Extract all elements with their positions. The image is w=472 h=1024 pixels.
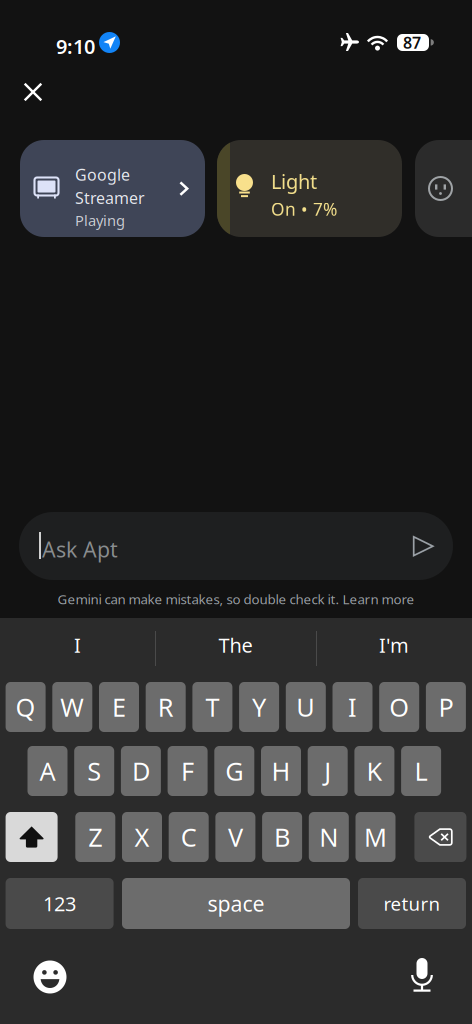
button[interactable]: Emoji keyboard <box>25 952 75 1002</box>
button[interactable]: 123 <box>6 878 114 929</box>
staticText: I <box>348 690 357 724</box>
staticText: B <box>274 820 290 854</box>
button[interactable]: Z <box>75 812 115 862</box>
staticText: Y <box>252 690 266 724</box>
staticText: G <box>225 754 243 788</box>
button[interactable]: Google <box>20 140 205 237</box>
button[interactable]: Dictation <box>397 950 447 1000</box>
staticText: J <box>324 754 331 788</box>
button[interactable]: H <box>261 746 301 796</box>
button[interactable]: L <box>401 746 441 796</box>
staticText: S <box>87 754 101 788</box>
button[interactable]: Outlet <box>415 140 472 237</box>
button[interactable]: space <box>122 878 350 929</box>
staticText: Google <box>75 164 130 185</box>
button[interactable]: Delete <box>414 812 466 862</box>
button[interactable]: I <box>332 682 372 732</box>
staticText: O <box>389 690 409 724</box>
button[interactable]: O <box>379 682 419 732</box>
staticText: C <box>181 820 197 854</box>
staticText: T <box>205 690 219 724</box>
staticText: Playing <box>75 210 125 230</box>
staticText: Gemini can make mistakes, so double chec… <box>57 590 414 608</box>
button[interactable]: M <box>355 812 395 862</box>
staticText: P <box>438 690 453 724</box>
staticText: W <box>60 690 84 724</box>
button[interactable]: I'm <box>316 618 472 672</box>
staticText: K <box>366 754 382 788</box>
button[interactable]: Shift <box>6 812 58 862</box>
staticText: A <box>39 754 55 788</box>
button[interactable]: T <box>192 682 232 732</box>
button[interactable]: U <box>286 682 326 732</box>
button[interactable]: N <box>309 812 349 862</box>
button[interactable]: D <box>121 746 161 796</box>
staticText: X <box>134 820 149 854</box>
staticText: On • 7% <box>271 198 337 221</box>
button[interactable]: P <box>426 682 466 732</box>
button[interactable]: J <box>308 746 348 796</box>
staticText: L <box>415 754 428 788</box>
staticText: V <box>228 820 243 854</box>
button[interactable]: K <box>354 746 394 796</box>
staticText: Z <box>88 820 102 854</box>
staticText: R <box>158 690 174 724</box>
staticText: E <box>112 690 126 724</box>
staticText: F <box>181 754 194 788</box>
staticText: 9:10 <box>56 33 95 60</box>
staticText: I'm <box>379 632 409 658</box>
button[interactable]: Close <box>13 72 53 112</box>
button[interactable]: R <box>146 682 186 732</box>
button[interactable]: Light <box>217 140 402 237</box>
button[interactable]: C <box>169 812 209 862</box>
button[interactable]: A <box>27 746 67 796</box>
staticText: Streamer <box>75 187 145 208</box>
button[interactable]: V <box>215 812 255 862</box>
staticText: M <box>364 820 387 854</box>
staticText: H <box>271 754 290 788</box>
staticText: Q <box>16 690 36 724</box>
staticText: I <box>74 632 81 658</box>
staticText: Ask Apt <box>42 535 118 563</box>
button[interactable]: Q <box>6 682 46 732</box>
button[interactable]: return <box>358 878 466 929</box>
staticText: 123 <box>43 890 76 917</box>
button[interactable]: G <box>214 746 254 796</box>
staticText: 87 <box>403 32 421 53</box>
button[interactable]: X <box>122 812 162 862</box>
staticText: N <box>319 820 338 854</box>
button[interactable]: S <box>74 746 114 796</box>
button[interactable]: The <box>155 618 316 672</box>
button[interactable]: W <box>52 682 92 732</box>
staticText: U <box>296 690 315 724</box>
staticText: Light <box>271 168 317 195</box>
button[interactable]: F <box>168 746 208 796</box>
staticText: return <box>383 891 440 916</box>
staticText: space <box>207 889 264 918</box>
button[interactable]: Y <box>239 682 279 732</box>
staticText: The <box>218 632 252 658</box>
button[interactable]: Send <box>403 526 443 566</box>
button[interactable]: I <box>0 618 155 672</box>
button[interactable]: B <box>262 812 302 862</box>
button[interactable]: E <box>99 682 139 732</box>
staticText: D <box>132 754 150 788</box>
